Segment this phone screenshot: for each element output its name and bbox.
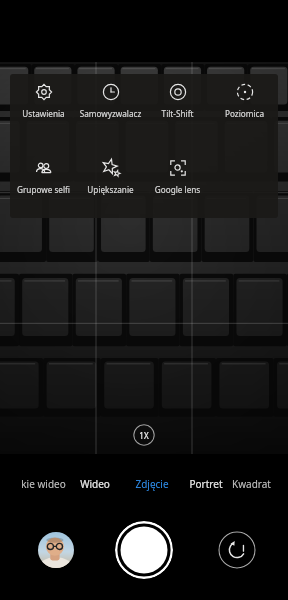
staticText: Portret [189, 477, 223, 491]
staticText: Upiększanie [79, 184, 142, 195]
button[interactable]: kie wideo [0, 468, 66, 500]
staticText: Zdjęcie [135, 477, 169, 491]
button[interactable]: Zdjęcie [124, 468, 180, 500]
staticText: 1X [139, 430, 149, 441]
button[interactable]: Switch camera [218, 531, 256, 569]
staticText: Samowyzwalacz [79, 108, 142, 119]
button[interactable]: Samowyzwalacz [77, 74, 144, 119]
button[interactable]: Poziomica [211, 74, 278, 119]
staticText: Tilt-Shift [146, 108, 209, 119]
staticText: Poziomica [213, 108, 276, 119]
button[interactable]: Kwadrat [232, 468, 288, 500]
button[interactable]: Wideo [66, 468, 124, 500]
staticText: Kwadrat [232, 477, 271, 491]
staticText: kie wideo [21, 477, 66, 491]
button[interactable]: Portret [180, 468, 232, 500]
button[interactable]: Shutter [115, 521, 173, 579]
button[interactable]: Tilt-Shift [144, 74, 211, 119]
staticText: Ustawienia [12, 108, 75, 119]
button[interactable]: Gallery [38, 532, 74, 568]
staticText: Wideo [80, 477, 110, 491]
button[interactable]: Zoom 1x [133, 424, 155, 446]
staticText: Google lens [146, 184, 209, 195]
button[interactable]: Grupowe selfi [10, 150, 77, 195]
button[interactable]: Google lens [144, 150, 211, 195]
button[interactable]: Ustawienia [10, 74, 77, 119]
button[interactable]: Upiększanie [77, 150, 144, 195]
staticText: Grupowe selfi [12, 184, 75, 195]
